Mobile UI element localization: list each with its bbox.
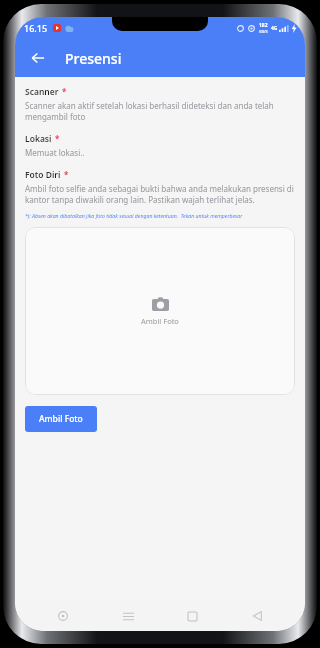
button[interactable]: Ambil Foto	[25, 227, 295, 395]
staticText: Ambil foto selfie anda sebagai bukti bah…	[25, 183, 295, 205]
staticText: Foto Diri	[25, 169, 61, 181]
staticText: *): Absen akan dibatalkan jika foto tida…	[25, 212, 243, 219]
button[interactable]: Recents	[111, 601, 145, 631]
button[interactable]: Home	[175, 601, 209, 631]
staticText: Lokasi	[25, 133, 52, 145]
staticText: 4G	[271, 25, 278, 32]
staticText: 182	[259, 22, 268, 29]
staticText: Scanner akan aktif setelah lokasi berhas…	[25, 100, 295, 122]
staticText: Memuat lokasi..	[25, 147, 85, 158]
button[interactable]: Ambil Foto	[25, 406, 97, 432]
staticText: Presensi	[65, 49, 122, 68]
staticText: Ambil Foto	[141, 316, 179, 326]
staticText: *	[62, 86, 67, 97]
staticText: *	[64, 169, 69, 180]
button[interactable]: Back	[21, 41, 55, 75]
button[interactable]: Assistant	[46, 601, 80, 631]
staticText: Ambil Foto	[39, 413, 83, 425]
staticText: KB/S	[259, 29, 268, 34]
staticText: 16.15	[24, 22, 48, 34]
staticText: Scanner	[25, 86, 59, 98]
button[interactable]: Back	[240, 601, 274, 631]
staticText: *	[55, 133, 60, 144]
